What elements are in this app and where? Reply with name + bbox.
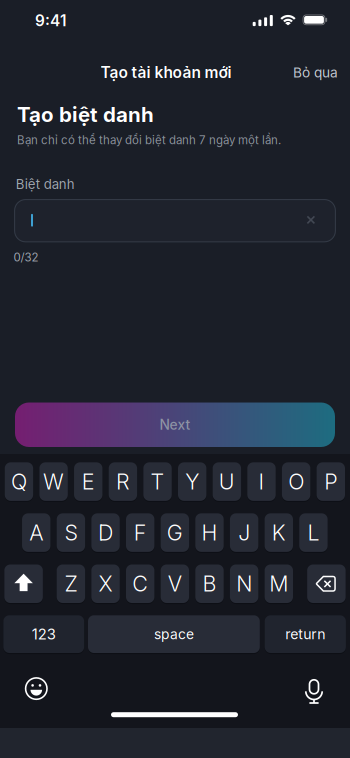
staticText: L [307, 520, 319, 546]
button[interactable]: R [109, 462, 137, 501]
staticText: I [258, 469, 264, 495]
staticText: D [98, 520, 113, 546]
staticText: P [324, 469, 337, 495]
staticText: K [272, 520, 286, 546]
button[interactable]: H [195, 513, 224, 552]
button[interactable]: O [282, 462, 310, 501]
staticText: return [285, 626, 325, 643]
button[interactable]: G [161, 513, 189, 552]
staticText: 9:41 [35, 11, 67, 30]
button[interactable]: D [91, 513, 120, 552]
staticText: Bỏ qua [293, 64, 338, 81]
button[interactable]: P [317, 462, 345, 501]
staticText: N [236, 571, 252, 597]
button[interactable]: V [161, 564, 189, 603]
staticText: Biệt danh [16, 176, 75, 192]
staticText: 0/32 [14, 250, 39, 264]
button[interactable]: Bỏ qua [293, 64, 338, 81]
staticText: 123 [32, 625, 56, 643]
staticText: T [150, 469, 164, 495]
button[interactable]: C [126, 564, 154, 603]
button[interactable]: T [143, 462, 172, 501]
staticText: Bạn chỉ có thể thay đổi biệt danh 7 ngày… [17, 133, 281, 147]
staticText: E [82, 469, 95, 495]
button[interactable]: F [126, 513, 154, 552]
button[interactable]: J [230, 513, 258, 552]
staticText: S [64, 520, 77, 546]
button[interactable]: B [195, 564, 224, 603]
staticText: Q [11, 469, 27, 495]
staticText: R [116, 469, 130, 495]
button[interactable]: Biệt danh [15, 199, 335, 242]
button[interactable]: L [299, 513, 328, 552]
staticText: U [219, 469, 235, 495]
button[interactable]: Shift [4, 564, 43, 603]
staticText: X [99, 571, 113, 597]
staticText: J [238, 520, 250, 546]
staticText: G [167, 520, 183, 546]
button[interactable]: Emoji [25, 677, 48, 700]
button[interactable]: Delete [307, 564, 346, 603]
staticText: C [132, 571, 148, 597]
staticText: M [269, 571, 288, 597]
staticText: O [288, 469, 304, 495]
button[interactable]: A [22, 513, 50, 552]
staticText: A [29, 520, 43, 546]
button[interactable]: 123 [3, 615, 84, 653]
button[interactable]: Q [5, 462, 33, 501]
staticText: F [134, 520, 147, 546]
staticText: Tạo biệt danh [17, 102, 154, 127]
button[interactable]: Z [57, 564, 85, 603]
button[interactable]: Next [15, 402, 335, 447]
button[interactable]: W [39, 462, 68, 501]
button[interactable]: N [230, 564, 258, 603]
button[interactable]: return [265, 615, 346, 653]
staticText: W [43, 469, 64, 495]
staticText: B [202, 571, 216, 597]
button[interactable]: E [74, 462, 102, 501]
button[interactable]: S [57, 513, 85, 552]
button[interactable]: X [91, 564, 120, 603]
staticText: Y [185, 469, 199, 495]
staticText: Next [159, 416, 190, 433]
button[interactable]: Dictation [303, 679, 325, 704]
button[interactable]: U [213, 462, 241, 501]
staticText: Z [64, 571, 77, 597]
button[interactable]: space [88, 615, 260, 653]
staticText: space [154, 626, 194, 642]
staticText: H [201, 520, 217, 546]
button[interactable]: I [247, 462, 276, 501]
button[interactable]: Y [178, 462, 206, 501]
staticText: V [168, 571, 182, 597]
button[interactable]: K [265, 513, 293, 552]
staticText: Tạo tài khoản mới [100, 63, 231, 82]
button[interactable]: Clear text [296, 205, 326, 235]
button[interactable]: M [265, 564, 293, 603]
